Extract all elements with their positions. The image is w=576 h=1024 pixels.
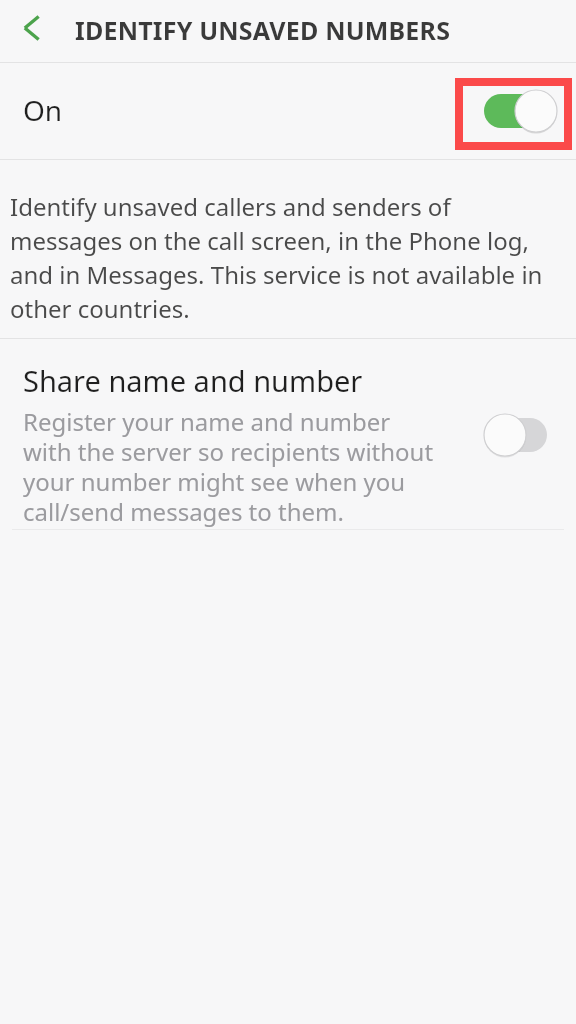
staticText: Share name and number [23, 361, 363, 400]
staticText: IDENTIFY UNSAVED NUMBERS [75, 13, 451, 47]
staticText: On [23, 91, 63, 129]
button[interactable]: Navigate up [6, 4, 54, 52]
staticText: Register your name and number with the s… [23, 405, 443, 528]
staticText: Identify unsaved callers and senders of … [10, 190, 566, 325]
button[interactable]: Share name and number [0, 339, 576, 529]
button[interactable]: On [0, 63, 576, 159]
